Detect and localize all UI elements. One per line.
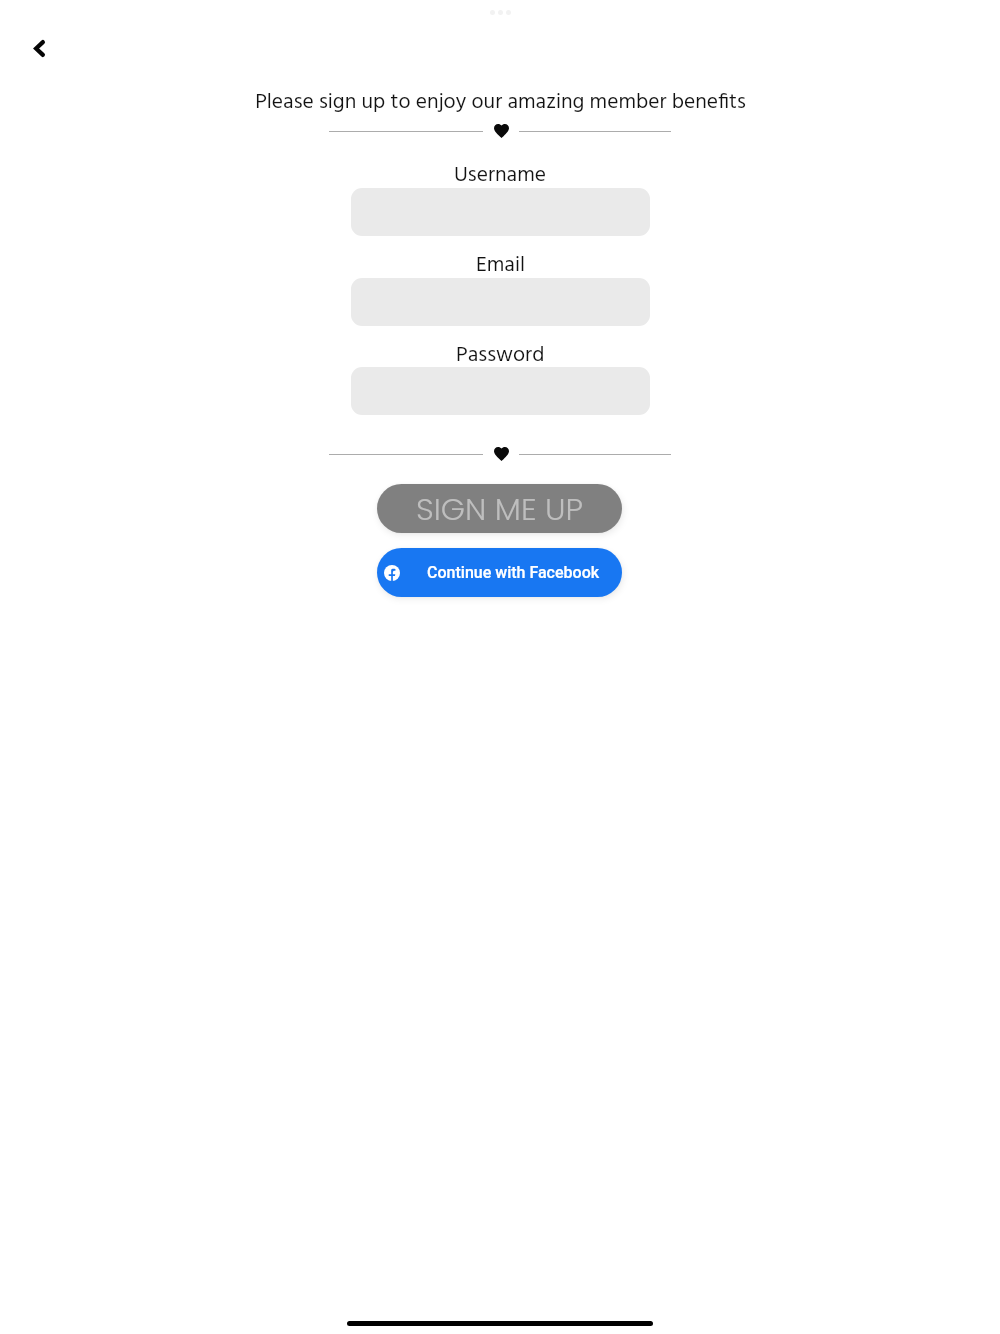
staticText: Username — [454, 158, 546, 192]
button[interactable]: Continue with Facebook — [377, 548, 622, 597]
staticText: Password — [456, 338, 545, 372]
staticText: SIGN ME UP — [416, 487, 583, 530]
button[interactable]: SIGN ME UP — [377, 484, 622, 533]
staticText: Continue with Facebook — [427, 563, 600, 582]
staticText: Please sign up to enjoy our amazing memb… — [255, 85, 746, 119]
button[interactable]: Back — [19, 28, 59, 68]
staticText: Email — [476, 248, 525, 282]
